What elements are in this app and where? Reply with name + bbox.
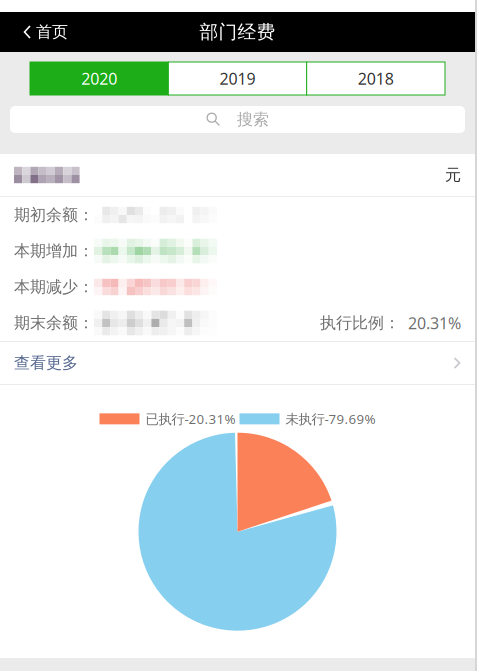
staticText: 2018 [358,68,394,89]
staticText: 首页 [36,22,68,42]
staticText: 查看更多 [14,353,78,373]
button[interactable]: 搜索 [10,106,465,133]
button[interactable]: 2019 [168,62,307,95]
staticText: 元 [445,165,461,185]
staticText: 执行比例： [320,313,400,333]
staticText: 20.31% [408,312,461,334]
button[interactable]: 2018 [307,62,445,95]
button[interactable]: 首页 [0,14,68,50]
staticText: 本期减少： [14,277,94,297]
staticText: 搜索 [237,110,269,129]
staticText: 期末余额： [14,313,94,333]
staticText: 部门经费 [199,20,275,43]
staticText: 已执行-20.31% [145,410,235,428]
button[interactable]: 2020 [30,62,168,95]
staticText: 本期增加： [14,241,94,261]
staticText: 2019 [219,68,255,89]
button[interactable]: 查看更多 [0,342,475,384]
staticText: 未执行-79.69% [285,410,375,428]
staticText: 期初余额： [14,205,94,225]
staticText: 2020 [81,68,117,89]
